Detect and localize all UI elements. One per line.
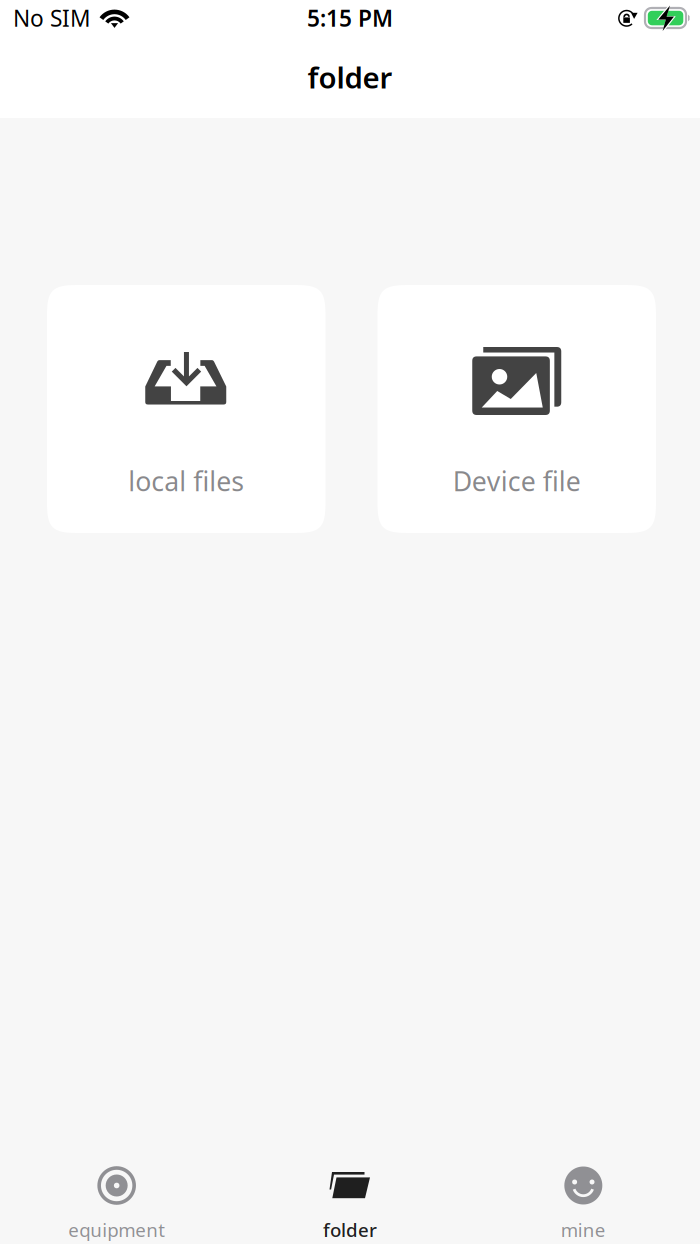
button[interactable]: local files [47, 285, 325, 533]
button[interactable]: mine [467, 1134, 700, 1244]
button[interactable]: equipment [0, 1134, 233, 1244]
staticText: No SIM [13, 3, 91, 33]
staticText: folder [307, 57, 392, 97]
staticText: folder [323, 1217, 377, 1242]
button[interactable]: folder [233, 1134, 467, 1244]
staticText: 5:15 PM [307, 3, 393, 33]
staticText: Device file [453, 463, 581, 499]
staticText: mine [561, 1217, 606, 1242]
staticText: equipment [68, 1217, 165, 1242]
button[interactable]: Device file [377, 285, 656, 533]
staticText: local files [128, 463, 244, 499]
